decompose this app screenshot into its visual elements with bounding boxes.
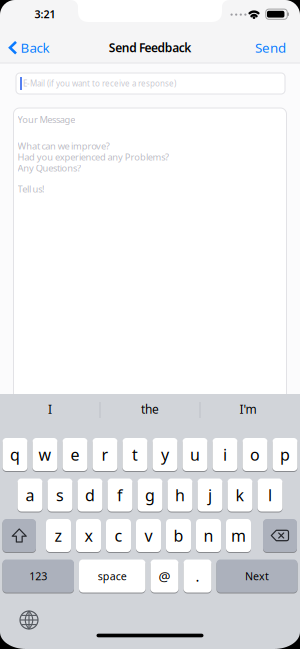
- staticText: l: [268, 484, 272, 506]
- button[interactable]: Your Message: [13, 108, 286, 408]
- staticText: j: [208, 484, 212, 506]
- staticText: Back: [20, 39, 49, 56]
- button[interactable]: s: [47, 478, 72, 512]
- button[interactable]: Shift: [2, 518, 36, 552]
- staticText: i: [223, 444, 227, 465]
- staticText: z: [54, 525, 62, 546]
- button[interactable]: .: [183, 559, 211, 593]
- staticText: h: [175, 484, 185, 506]
- staticText: o: [250, 444, 260, 465]
- staticText: Next: [245, 569, 269, 583]
- staticText: f: [117, 484, 123, 506]
- button[interactable]: h: [167, 478, 192, 512]
- button[interactable]: f: [107, 478, 132, 512]
- staticText: k: [235, 484, 244, 506]
- button[interactable]: q: [2, 437, 27, 471]
- staticText: x: [84, 525, 92, 546]
- button[interactable]: x: [76, 518, 101, 552]
- button[interactable]: Next keyboard: [16, 607, 42, 633]
- button[interactable]: Delete: [263, 518, 297, 552]
- staticText: a: [25, 484, 34, 506]
- button[interactable]: c: [106, 518, 131, 552]
- staticText: E-Mail (if you want to receive a respons…: [23, 78, 176, 89]
- button[interactable]: b: [166, 518, 191, 552]
- button[interactable]: I: [1, 394, 99, 424]
- staticText: p: [280, 444, 290, 465]
- staticText: b: [173, 525, 183, 546]
- button[interactable]: o: [242, 437, 267, 471]
- staticText: I: [48, 401, 52, 417]
- staticText: e: [70, 444, 79, 465]
- staticText: Tell us!: [17, 183, 45, 195]
- button[interactable]: l: [257, 478, 282, 512]
- button[interactable]: space: [79, 559, 145, 593]
- staticText: r: [101, 444, 108, 465]
- staticText: Send: [255, 39, 286, 56]
- button[interactable]: d: [77, 478, 102, 512]
- staticText: u: [190, 444, 200, 465]
- button[interactable]: y: [152, 437, 177, 471]
- staticText: .: [195, 566, 199, 586]
- button[interactable]: i: [212, 437, 237, 471]
- staticText: t: [132, 444, 138, 465]
- staticText: y: [161, 444, 169, 465]
- button[interactable]: the: [101, 394, 199, 424]
- button[interactable]: z: [46, 518, 71, 552]
- button[interactable]: r: [92, 437, 117, 471]
- staticText: w: [38, 444, 51, 465]
- button[interactable]: 123: [2, 559, 74, 593]
- staticText: m: [231, 525, 246, 546]
- staticText: 123: [29, 569, 47, 583]
- staticText: c: [114, 525, 122, 546]
- staticText: What can we improve?: [17, 140, 110, 152]
- button[interactable]: a: [17, 478, 42, 512]
- staticText: Had you experienced any Problems?: [17, 151, 169, 163]
- button[interactable]: E-Mail (if you want to receive a respons…: [16, 73, 285, 94]
- staticText: Your Message: [17, 113, 75, 126]
- button[interactable]: p: [272, 437, 297, 471]
- button[interactable]: I'm: [199, 394, 297, 424]
- staticText: space: [98, 569, 127, 583]
- button[interactable]: Send: [255, 39, 286, 56]
- button[interactable]: w: [32, 437, 57, 471]
- staticText: 3:21: [34, 7, 55, 21]
- staticText: q: [10, 444, 20, 465]
- button[interactable]: e: [62, 437, 87, 471]
- staticText: Any Questions?: [17, 162, 81, 174]
- button[interactable]: v: [136, 518, 161, 552]
- staticText: Send Feedback: [109, 40, 191, 56]
- button[interactable]: @: [150, 559, 178, 593]
- button[interactable]: n: [196, 518, 221, 552]
- button[interactable]: u: [182, 437, 207, 471]
- button[interactable]: Back: [8, 39, 49, 56]
- button[interactable]: g: [137, 478, 162, 512]
- button[interactable]: t: [122, 437, 147, 471]
- staticText: v: [144, 525, 152, 546]
- staticText: s: [56, 484, 64, 506]
- staticText: g: [145, 484, 155, 506]
- button[interactable]: k: [227, 478, 252, 512]
- staticText: @: [158, 567, 170, 585]
- button[interactable]: j: [197, 478, 222, 512]
- staticText: the: [141, 401, 159, 417]
- button[interactable]: Next: [216, 559, 297, 593]
- staticText: I'm: [239, 401, 256, 417]
- button[interactable]: m: [226, 518, 251, 552]
- staticText: n: [203, 525, 213, 546]
- staticText: d: [85, 484, 95, 506]
